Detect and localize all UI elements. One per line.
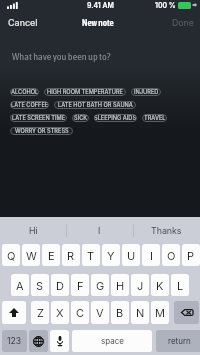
staticText: O — [167, 249, 176, 262]
button[interactable]: A — [11, 274, 29, 296]
staticText: 123 — [7, 336, 22, 346]
staticText: H — [116, 279, 125, 292]
staticText: N — [136, 306, 145, 319]
staticText: Thanks — [151, 225, 182, 236]
button[interactable]: Z — [31, 301, 49, 324]
staticText: LATE COFFEE — [11, 102, 49, 109]
staticText: space — [101, 336, 124, 346]
button[interactable]: HIGH ROOM TEMPERATURE — [44, 88, 126, 96]
staticText: 9.41 AM — [87, 1, 114, 9]
staticText: What have you been up to? — [12, 51, 111, 63]
staticText: B — [116, 306, 124, 319]
button[interactable]: 123 — [2, 330, 27, 352]
staticText: WORRY OR STRESS — [15, 128, 69, 135]
button[interactable]: Q — [2, 244, 20, 266]
staticText: Hi — [29, 225, 38, 236]
button[interactable]: Thanks — [133, 217, 200, 244]
staticText: Z — [37, 306, 44, 319]
button[interactable]: B — [111, 301, 129, 324]
staticText: C — [76, 306, 85, 319]
button[interactable]: Backspace — [174, 301, 199, 324]
button[interactable]: Shift — [2, 301, 26, 324]
staticText: Q — [7, 249, 16, 262]
button[interactable]: I — [66, 217, 133, 244]
button[interactable]: D — [51, 274, 69, 296]
button[interactable]: space — [72, 330, 152, 352]
staticText: E — [48, 249, 55, 262]
button[interactable]: INJURED — [131, 88, 161, 96]
button[interactable]: K — [151, 274, 169, 296]
staticText: L — [177, 279, 184, 292]
button[interactable]: T — [82, 244, 100, 266]
staticText: X — [56, 306, 64, 319]
staticText: Y — [107, 249, 115, 262]
button[interactable]: LATE SCREEN TIME — [10, 114, 67, 122]
button[interactable]: V — [91, 301, 109, 324]
staticText: TRAVEL — [144, 115, 166, 122]
button[interactable]: P — [182, 244, 200, 266]
button[interactable]: F — [71, 274, 89, 296]
staticText: Cancel — [8, 17, 38, 28]
button[interactable]: SICK — [72, 114, 89, 122]
staticText: INJURED — [134, 89, 159, 96]
staticText: G — [96, 279, 105, 292]
button[interactable]: X — [51, 301, 69, 324]
button[interactable]: Done — [172, 17, 194, 28]
button[interactable]: LATE HOT BATH OR SAUNA — [54, 101, 136, 109]
button[interactable]: I — [142, 244, 160, 266]
staticText: R — [67, 249, 75, 262]
button[interactable]: U — [122, 244, 140, 266]
staticText: S — [36, 279, 44, 292]
button[interactable]: R — [62, 244, 80, 266]
staticText: J — [137, 279, 144, 292]
staticText: SICK — [74, 115, 88, 122]
button[interactable]: C — [71, 301, 89, 324]
button[interactable]: S — [31, 274, 49, 296]
button[interactable]: WORRY OR STRESS — [10, 127, 73, 135]
button[interactable]: LATE COFFEE — [10, 101, 49, 109]
button[interactable]: O — [162, 244, 180, 266]
staticText: K — [156, 279, 164, 292]
button[interactable]: return — [156, 330, 200, 352]
button[interactable]: Cancel — [8, 17, 38, 28]
button[interactable]: N — [131, 301, 149, 324]
staticText: W — [26, 249, 37, 262]
staticText: I — [150, 249, 153, 262]
button[interactable]: H — [111, 274, 129, 296]
button[interactable]: TRAVEL — [142, 114, 167, 122]
staticText: M — [155, 306, 165, 319]
staticText: New note — [82, 17, 114, 28]
button[interactable]: J — [131, 274, 149, 296]
button[interactable]: Hi — [0, 217, 66, 244]
staticText: F — [77, 279, 84, 292]
staticText: 100 % — [155, 1, 176, 9]
staticText: Done — [172, 17, 194, 28]
button[interactable]: G — [91, 274, 109, 296]
button[interactable]: Y — [102, 244, 120, 266]
staticText: D — [56, 279, 64, 292]
staticText: HIGH ROOM TEMPERATURE — [47, 89, 123, 96]
button[interactable]: L — [171, 274, 189, 296]
button[interactable]: SLEEPING AIDS — [94, 114, 137, 122]
button[interactable]: W — [22, 244, 40, 266]
staticText: ALCOHOL — [11, 89, 39, 96]
staticText: T — [87, 249, 95, 262]
staticText: I — [98, 225, 101, 236]
staticText: LATE SCREEN TIME — [12, 115, 66, 122]
staticText: return — [168, 336, 191, 346]
staticText: SLEEPING AIDS — [94, 115, 137, 122]
button[interactable]: E — [42, 244, 60, 266]
staticText: LATE HOT BATH OR SAUNA — [58, 102, 133, 109]
staticText: P — [187, 249, 195, 262]
button[interactable]: Change keyboard — [29, 330, 48, 352]
button[interactable]: Dictate — [50, 330, 69, 352]
staticText: U — [127, 249, 136, 262]
staticText: V — [96, 306, 104, 319]
button[interactable]: M — [151, 301, 169, 324]
button[interactable]: ALCOHOL — [10, 88, 39, 96]
staticText: A — [16, 279, 24, 292]
